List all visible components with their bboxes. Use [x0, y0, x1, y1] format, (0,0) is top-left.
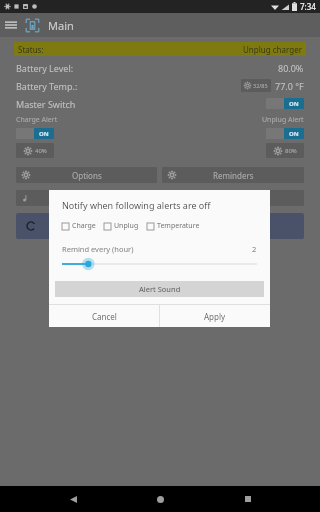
- staticText: 77.0 °F: [275, 80, 304, 92]
- staticText: Unplug: [114, 221, 139, 231]
- button[interactable]: Refresh: [16, 213, 304, 239]
- button[interactable]: 40%: [16, 143, 54, 158]
- button[interactable]: Open navigation drawer: [0, 14, 22, 36]
- staticText: 40%: [35, 147, 47, 155]
- button[interactable]: Unplug: [104, 221, 139, 231]
- button[interactable]: Reminders: [162, 167, 304, 183]
- button[interactable]: Temperature: [147, 221, 200, 231]
- staticText: Battery Temp.:: [16, 80, 78, 92]
- staticText: Charge Alert: [16, 115, 58, 125]
- button[interactable]: Home: [145, 486, 175, 512]
- staticText: Reminders: [213, 170, 254, 181]
- staticText: ON: [39, 130, 49, 138]
- staticText: 80%: [285, 147, 297, 155]
- staticText: 7:34: [300, 1, 316, 12]
- staticText: Unplug Alert: [262, 115, 304, 125]
- button[interactable]: Toggle on: [266, 98, 304, 109]
- button[interactable]: 32/85: [241, 79, 271, 92]
- button[interactable]: Options: [16, 167, 157, 183]
- staticText: Cancel: [92, 311, 117, 322]
- staticText: Alert Sound: [139, 284, 181, 294]
- staticText: Charge: [72, 221, 96, 231]
- button[interactable]: Status:: [14, 42, 306, 56]
- staticText: 80.0%: [278, 62, 304, 74]
- button[interactable]: Back: [58, 486, 88, 512]
- staticText: 2: [252, 244, 257, 254]
- staticText: ON: [289, 130, 299, 138]
- button[interactable]: 80%: [266, 143, 304, 158]
- staticText: Remind every (hour): [62, 244, 134, 254]
- button[interactable]: Toggle on: [16, 128, 54, 139]
- staticText: Master Switch: [16, 98, 76, 110]
- button[interactable]: Recent apps: [233, 486, 263, 512]
- staticText: Status:: [18, 44, 44, 55]
- staticText: Temperature: [157, 221, 200, 231]
- staticText: Notify when following alerts are off: [62, 199, 211, 211]
- button[interactable]: Charge: [62, 221, 96, 231]
- button[interactable]: Toggle on: [266, 128, 304, 139]
- staticText: Main: [48, 18, 74, 33]
- staticText: 32/85: [253, 82, 268, 89]
- button[interactable]: Alert Sound: [55, 281, 264, 297]
- staticText: Battery Level:: [16, 62, 74, 74]
- staticText: Options: [72, 170, 102, 181]
- staticText: Unplug charger: [243, 44, 302, 55]
- button[interactable]: Cancel: [49, 305, 159, 327]
- button[interactable]: Apply: [160, 305, 270, 327]
- button[interactable]: Remind every hours slider: [62, 257, 257, 271]
- staticText: Apply: [204, 311, 226, 322]
- staticText: Create doctors: [132, 193, 188, 204]
- button[interactable]: Create doctors: [16, 190, 304, 206]
- staticText: ON: [289, 100, 299, 108]
